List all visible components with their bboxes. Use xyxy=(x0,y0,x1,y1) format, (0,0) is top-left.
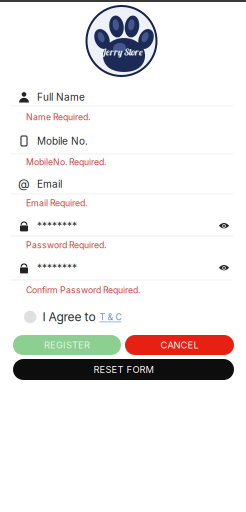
staticText: REGISTER xyxy=(44,339,90,351)
button[interactable]: I Agree to xyxy=(24,309,144,325)
button[interactable]: RESET FORM xyxy=(13,359,234,380)
button[interactable]: REGISTER xyxy=(13,335,121,355)
staticText: Jerry Store xyxy=(101,46,142,58)
staticText: CANCEL xyxy=(160,339,198,351)
staticText: Confirm Password Required. xyxy=(26,285,140,295)
button[interactable]: CANCEL xyxy=(125,335,234,355)
staticText: ******** xyxy=(37,220,77,232)
staticText: Email Required. xyxy=(26,198,87,208)
staticText: RESET FORM xyxy=(93,364,153,375)
staticText: I Agree to xyxy=(42,310,95,324)
staticText: Name Required. xyxy=(26,112,90,122)
staticText: Email xyxy=(37,178,62,190)
staticText: Password Required. xyxy=(26,240,106,250)
staticText: T & C xyxy=(99,312,121,322)
staticText: Full Name xyxy=(37,91,85,103)
staticText: @ xyxy=(18,177,30,191)
staticText: ******** xyxy=(37,262,77,274)
staticText: Mobile No. xyxy=(37,135,88,147)
staticText: MobileNo. Required. xyxy=(26,157,106,167)
